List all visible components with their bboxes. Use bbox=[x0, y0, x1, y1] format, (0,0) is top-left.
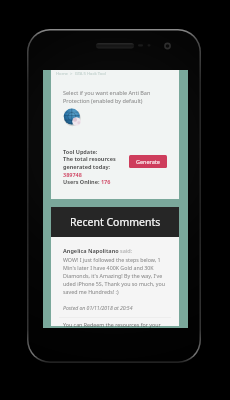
staticText: Angelica Napolitano said: bbox=[63, 247, 133, 254]
staticText: 389748 bbox=[63, 171, 82, 178]
button[interactable]: Anti Ban Protection bbox=[63, 108, 82, 127]
staticText: Users Online: 176 bbox=[63, 178, 111, 185]
button[interactable]: Recent Comments bbox=[51, 207, 179, 237]
staticText: Select if you want enable Anti Ban Prote… bbox=[63, 89, 151, 105]
staticText: The total resources generated today: bbox=[63, 155, 116, 171]
staticText: Posted on 01/11/2018 at 20:54 bbox=[63, 305, 133, 312]
staticText: Recent Comments bbox=[70, 215, 161, 229]
staticText: Tool Update: bbox=[63, 148, 98, 155]
staticText: You can Redeem the resources for your bbox=[63, 321, 161, 328]
staticText: Generate bbox=[136, 158, 160, 165]
staticText: Home > GTA 5 Hack Tool bbox=[56, 71, 106, 77]
button[interactable]: Generate bbox=[129, 155, 167, 168]
staticText: WOW! I just followed the steps below, 1 … bbox=[63, 256, 169, 295]
